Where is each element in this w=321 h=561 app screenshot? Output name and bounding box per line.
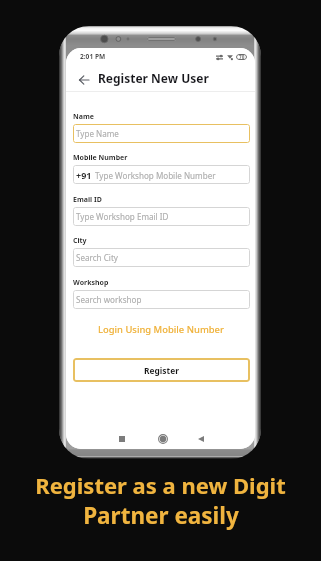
staticText: 2:01 PM [80,52,106,61]
staticText: Workshop [73,278,109,288]
button[interactable]: Back [189,429,213,449]
button[interactable]: Home [150,429,175,449]
button[interactable]: +91 [73,165,250,184]
staticText: Search City [76,252,118,263]
staticText: Register as a new Digit [35,470,286,500]
staticText: Partner easily [83,500,239,531]
staticText: Mobile Number [73,153,128,163]
staticText: Type Name [76,128,119,139]
staticText: +91 [76,169,92,181]
button[interactable]: Login Using Mobile Number [66,322,255,336]
staticText: Type Workshop Mobile Number [95,170,216,181]
button[interactable]: Back [74,70,93,89]
button[interactable]: Search workshop [73,290,250,309]
staticText: Name [73,112,94,122]
staticText: Type Workshop Email ID [76,211,169,222]
button[interactable]: Type Name [73,124,250,143]
button[interactable]: Register [73,358,250,382]
staticText: Search workshop [76,294,142,305]
staticText: 70 [239,54,245,60]
staticText: City [73,236,87,246]
button[interactable]: Recent apps [110,429,134,449]
staticText: Register [144,365,179,376]
staticText: Email ID [73,195,102,205]
button[interactable]: Type Workshop Email ID [73,207,250,226]
staticText: Login Using Mobile Number [98,323,224,336]
button[interactable]: Search City [73,248,250,267]
staticText: Register New User [98,70,209,86]
